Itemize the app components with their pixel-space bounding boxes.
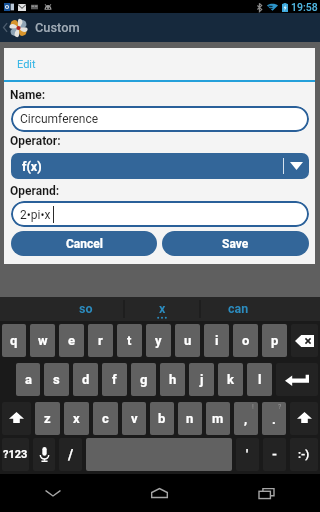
staticText: k [227,372,234,387]
button[interactable]: Circumference [11,106,309,132]
staticText: , [244,412,248,427]
button[interactable]: p [262,324,287,357]
button[interactable]: o [233,324,258,357]
button[interactable]: e [59,324,84,357]
staticText: m [212,411,224,426]
staticText: Save [222,237,249,251]
button[interactable]: Voice input [33,438,55,471]
staticText: p [271,333,279,348]
staticText: ?123 [3,448,28,461]
button[interactable]: i [204,324,229,357]
staticText: so [79,301,93,316]
staticText: l [258,372,262,387]
button[interactable]: can [201,297,275,321]
staticText: t [127,333,132,348]
staticText: x [159,301,166,316]
button[interactable]: Home [106,474,213,512]
staticText: o [242,333,250,348]
staticText: u [184,333,192,348]
button[interactable]: s [44,363,69,396]
staticText: Circumference [20,112,99,126]
staticText: i [215,333,219,348]
staticText: n [186,411,194,426]
button[interactable]: Back [0,474,106,512]
button[interactable]: :-) [290,438,318,471]
staticText: s [53,372,60,387]
button[interactable]: / [59,438,82,471]
button[interactable]: x [64,402,89,435]
button[interactable]: n [178,402,202,435]
button[interactable]: d [73,363,98,396]
staticText: . [272,412,276,427]
staticText: v [131,411,138,426]
button[interactable]: Recent apps [213,474,320,512]
button[interactable]: x [125,297,199,321]
button[interactable]: f(x) [11,153,309,179]
button[interactable]: k [218,363,243,396]
staticText: Cancel [66,237,103,251]
button[interactable]: g [131,363,156,396]
button[interactable]: z [35,402,60,435]
staticText: w [38,333,48,348]
button[interactable]: r [88,324,113,357]
button[interactable]: f [102,363,127,396]
button[interactable]: Shift [290,402,318,435]
button[interactable]: Shift [2,402,31,435]
staticText: ' [246,447,249,462]
staticText: can [228,301,249,316]
button[interactable]: Save [162,231,309,256]
button[interactable]: m [206,402,230,435]
staticText: Name: [10,88,46,102]
staticText: r [98,333,103,348]
staticText: ! [252,403,254,411]
staticText: ? [278,403,282,411]
button[interactable]: 2•pi•x [11,201,309,227]
staticText: f(x) [22,159,42,174]
staticText: z [44,411,51,426]
staticText: Operand: [10,184,60,198]
staticText: c [102,411,109,426]
button[interactable]: . [262,402,286,435]
button[interactable]: Enter [276,363,318,396]
button[interactable]: l [247,363,272,396]
button[interactable]: c [93,402,118,435]
staticText: b [158,411,166,426]
staticText: g [140,372,148,387]
button[interactable]: q [2,324,26,357]
button[interactable]: u [175,324,200,357]
staticText: - [272,447,278,462]
staticText: / [68,447,74,463]
staticText: f [112,372,117,387]
staticText: :-) [298,448,310,461]
staticText: j [200,372,204,387]
button[interactable]: ?123 [2,438,29,471]
button[interactable]: j [189,363,214,396]
button[interactable]: a [16,363,40,396]
button[interactable]: v [122,402,146,435]
button[interactable]: Cancel [11,231,157,256]
button[interactable]: w [30,324,55,357]
button[interactable]: b [150,402,174,435]
staticText: q [10,333,18,348]
button[interactable]: Backspace [291,324,318,357]
button[interactable]: - [263,438,286,471]
button[interactable]: , [234,402,258,435]
staticText: Edit [17,58,36,71]
button[interactable]: t [117,324,142,357]
staticText: 19:58 [291,1,318,13]
staticText: 2•pi•x [20,208,51,222]
staticText: a [25,372,32,387]
button[interactable]: Edit [4,48,315,82]
staticText: Operator: [10,134,61,148]
button[interactable]: Navigate up [0,13,28,42]
button[interactable]: y [146,324,171,357]
button[interactable]: h [160,363,185,396]
staticText: h [169,372,177,387]
staticText: Custom [35,20,80,35]
button[interactable]: ' [236,438,259,471]
staticText: d [82,372,90,387]
button[interactable]: so [48,297,123,321]
staticText: e [68,333,76,348]
staticText: x [73,411,80,426]
